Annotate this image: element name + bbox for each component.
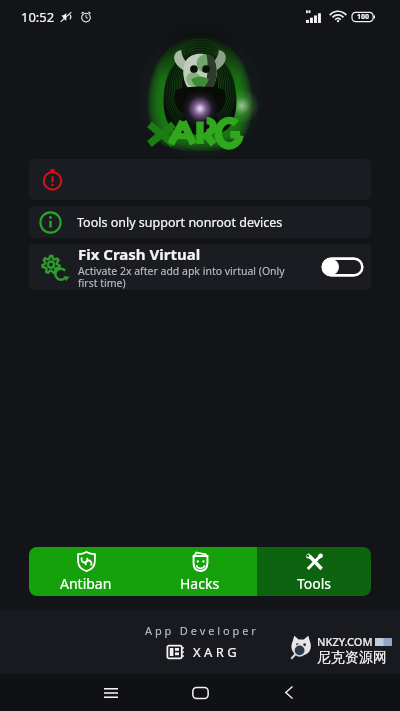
- staticText: Tools only support nonroot devices: [77, 214, 283, 231]
- staticText: 10:52: [21, 8, 55, 26]
- staticText: Antiban: [60, 574, 112, 593]
- staticText: Fix Crash Virtual: [78, 244, 201, 264]
- staticText: 尼克资源网: [317, 649, 387, 667]
- button[interactable]: Tools only support nonroot devices: [29, 206, 371, 238]
- staticText: Hacks: [180, 574, 220, 593]
- button[interactable]: Back: [269, 674, 309, 711]
- button[interactable]: Fix Crash Virtual toggle: [321, 257, 364, 277]
- staticText: X A R G: [193, 643, 237, 661]
- staticText: Tools: [297, 574, 332, 593]
- staticText: Activate 2x after add apk into virtual (…: [78, 264, 306, 290]
- button[interactable]: Hacks: [143, 547, 257, 596]
- staticText: A p p D e v e l o p e r: [145, 623, 256, 638]
- staticText: NKZY.COM: [317, 634, 373, 649]
- button[interactable]: Home: [180, 674, 220, 711]
- button[interactable]: Tools: [257, 547, 371, 596]
- button[interactable]: [29, 159, 371, 200]
- staticText: 100: [357, 12, 370, 22]
- button[interactable]: Fix Crash Virtual: [29, 244, 371, 290]
- button[interactable]: Recent apps: [91, 674, 131, 711]
- button[interactable]: Antiban: [29, 547, 143, 596]
